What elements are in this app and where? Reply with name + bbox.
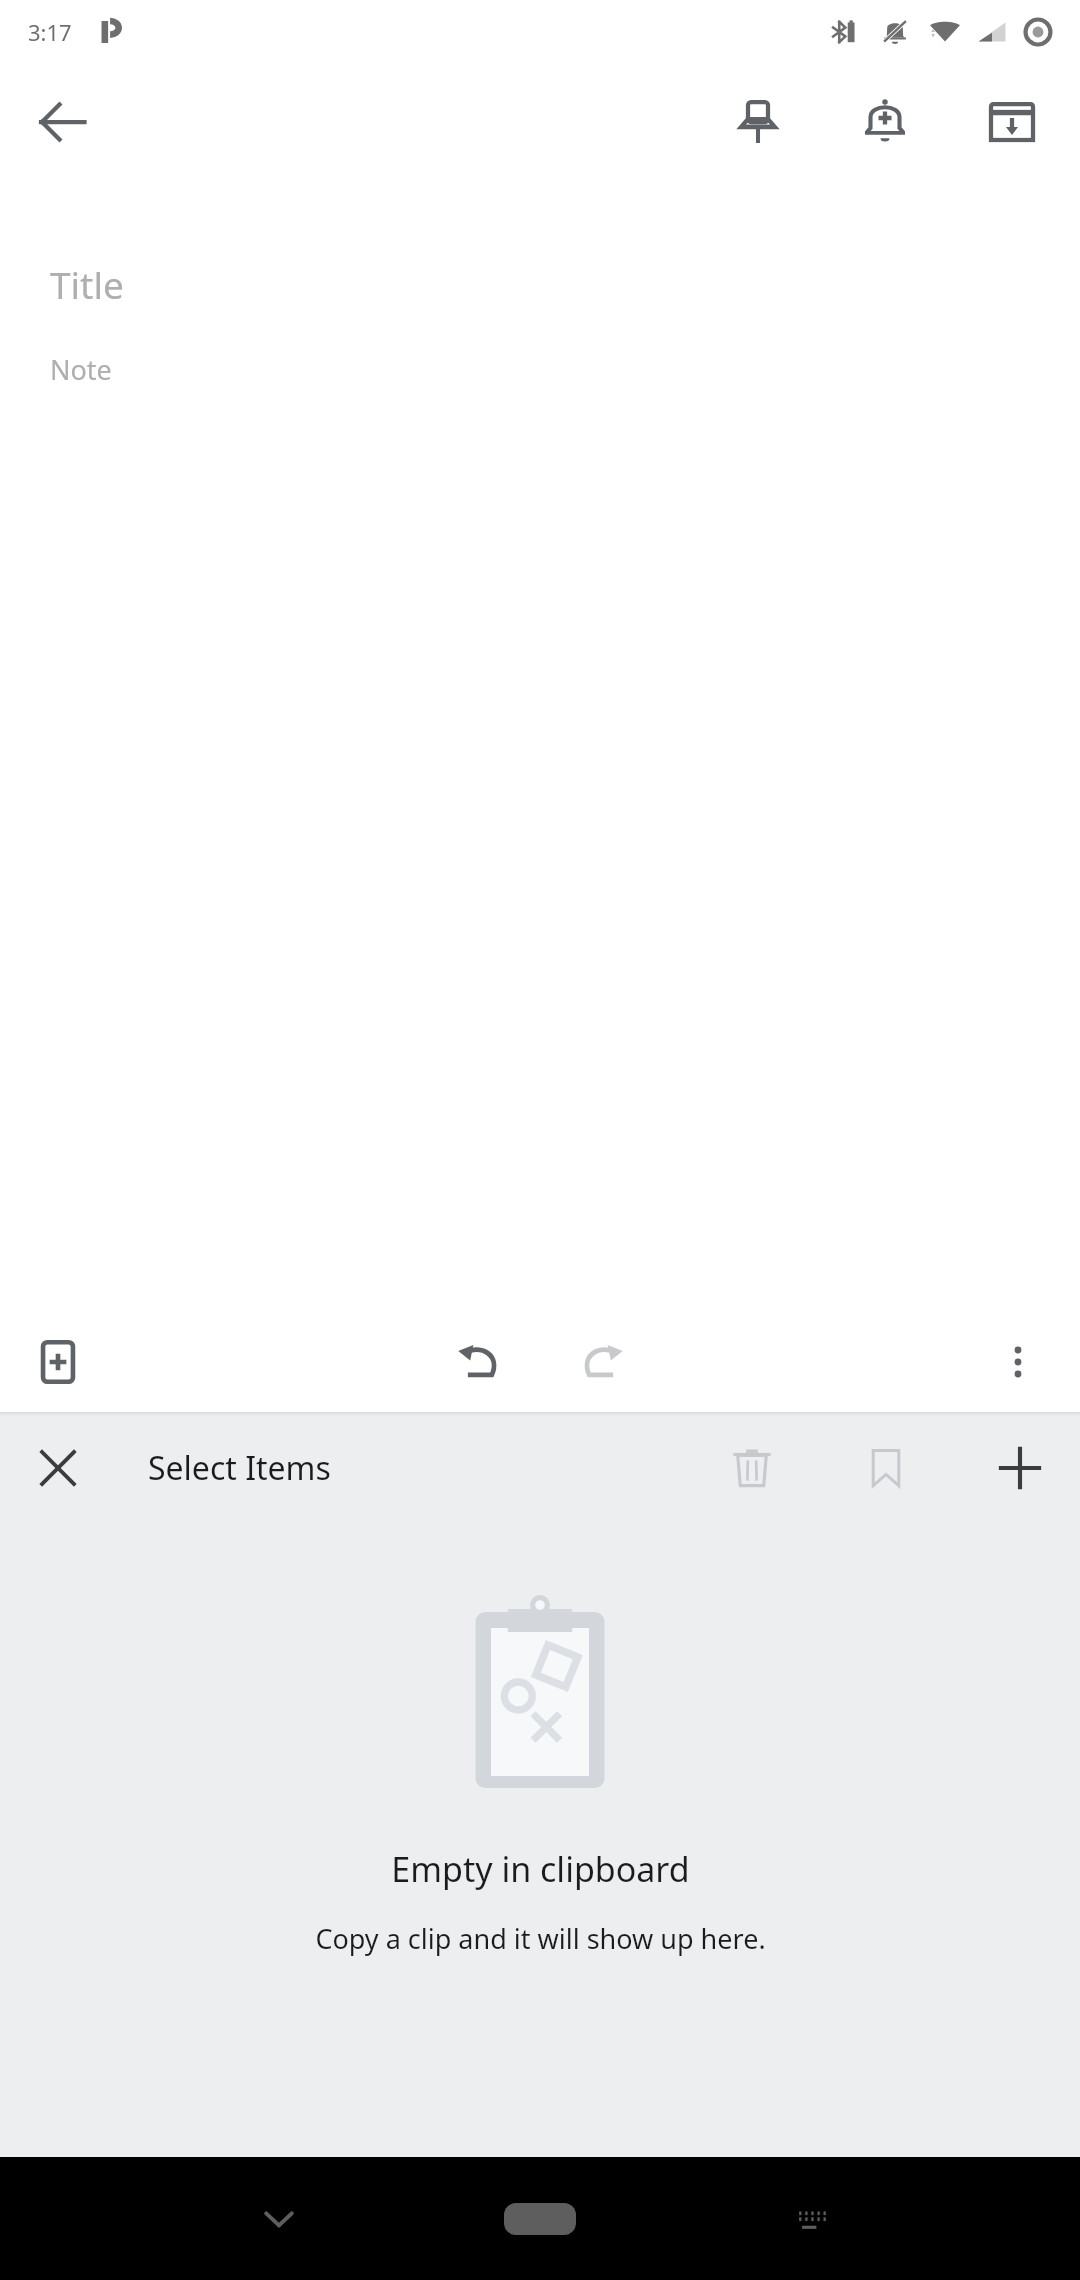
button[interactable]: Add: [8, 1312, 108, 1412]
staticText: Copy a clip and it will show up here.: [315, 1920, 766, 1957]
button[interactable]: Note: [50, 351, 1030, 388]
button[interactable]: Redo: [553, 1312, 653, 1412]
button[interactable]: Undo: [428, 1312, 528, 1412]
button[interactable]: Back: [224, 2164, 334, 2274]
staticText: Note: [50, 351, 112, 388]
staticText: Title: [50, 259, 124, 309]
button[interactable]: Navigate up: [8, 68, 116, 176]
button[interactable]: Add reminder: [831, 68, 939, 176]
staticText: Empty in clipboard: [391, 1846, 690, 1892]
button[interactable]: Pin note: [704, 68, 812, 176]
button[interactable]: Delete: [704, 1420, 800, 1516]
button[interactable]: Add clip: [972, 1420, 1068, 1516]
button[interactable]: Close clipboard: [10, 1420, 106, 1516]
button[interactable]: Title: [50, 259, 1030, 309]
button[interactable]: Switch keyboard: [758, 2164, 868, 2274]
button[interactable]: Bookmark: [838, 1420, 934, 1516]
staticText: Select Items: [148, 1446, 331, 1490]
staticText: 3:17: [28, 17, 72, 47]
button[interactable]: Home: [480, 2191, 600, 2247]
button[interactable]: Archive: [958, 68, 1066, 176]
button[interactable]: More options: [968, 1312, 1068, 1412]
